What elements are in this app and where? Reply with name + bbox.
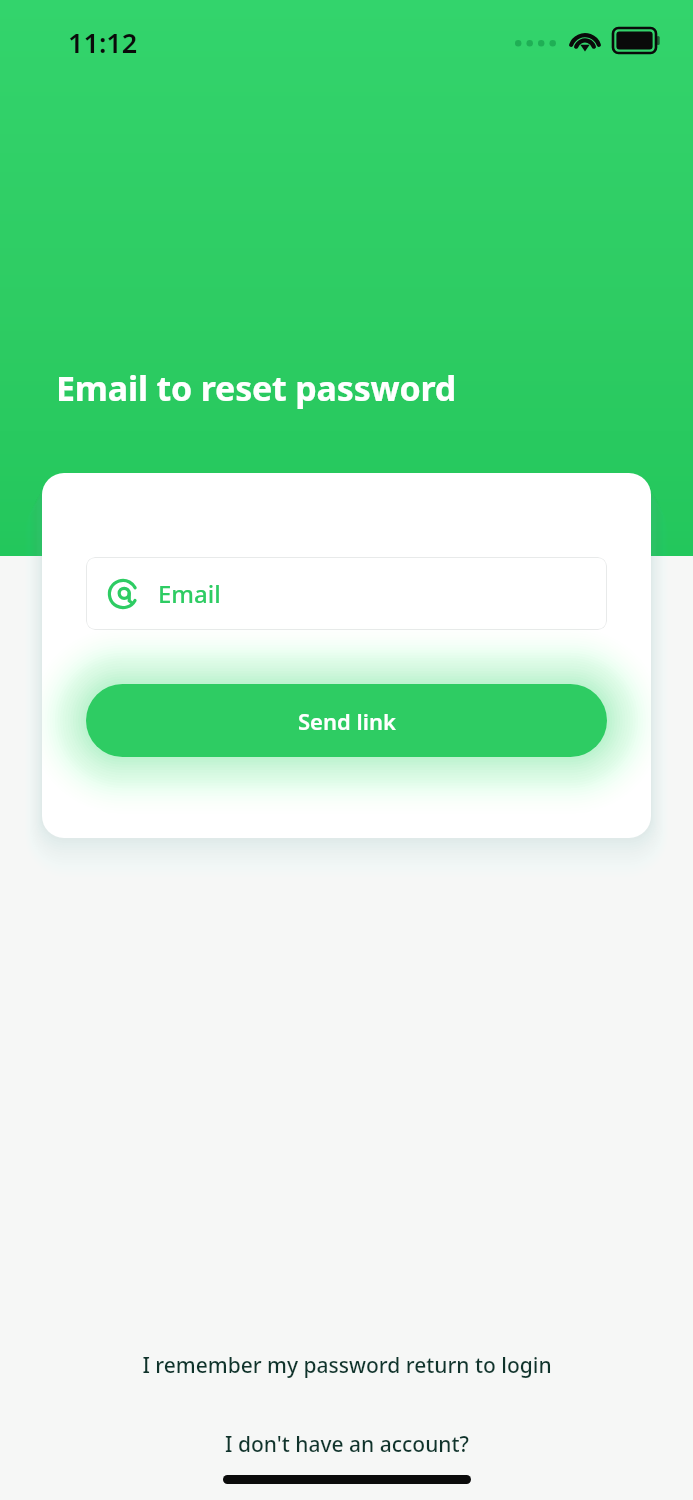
- button[interactable]: I remember my password return to login: [124, 1345, 570, 1386]
- staticText: I remember my password return to login: [142, 1351, 552, 1380]
- staticText: Email: [158, 577, 221, 610]
- staticText: 11:12: [68, 24, 138, 61]
- staticText: Send link: [298, 706, 396, 736]
- button[interactable]: Send link: [86, 684, 607, 757]
- staticText: I don't have an account?: [225, 1430, 469, 1459]
- button[interactable]: I don't have an account?: [207, 1424, 487, 1465]
- staticText: Email to reset password: [56, 365, 457, 411]
- button[interactable]: Email: [86, 557, 607, 630]
